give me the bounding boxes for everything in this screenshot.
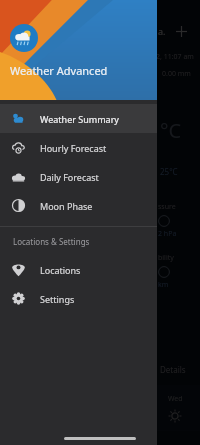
button[interactable]: Moon Phase	[0, 191, 157, 220]
staticText: Wed	[168, 394, 183, 404]
staticText: Details	[160, 364, 186, 375]
staticText: 0.00 mm	[162, 69, 191, 79]
button[interactable]: Locations	[0, 255, 157, 284]
button[interactable]: Daily Forecast	[0, 162, 157, 191]
staticText: Settings	[40, 293, 75, 305]
button[interactable]: Settings	[0, 284, 157, 313]
staticText: bility	[158, 253, 174, 263]
staticText: Weather Summary	[40, 113, 119, 125]
staticText: 25°C	[160, 166, 178, 177]
staticText: Moon Phase	[40, 200, 93, 212]
staticText: 2 hPa	[158, 229, 177, 239]
staticText: Weather Advanced	[10, 63, 108, 78]
staticText: Daily Forecast	[40, 171, 99, 183]
staticText: °C	[160, 117, 182, 144]
button[interactable]: Hourly Forecast	[0, 133, 157, 162]
button[interactable]: Weather Summary	[0, 104, 157, 133]
staticText: Locations & Settings	[13, 236, 90, 247]
staticText: km	[158, 280, 169, 290]
staticText: ssure	[158, 202, 176, 212]
staticText: 2, 11:07 am	[156, 52, 194, 62]
staticText: Hourly Forecast	[40, 142, 107, 154]
button[interactable]: Add location	[170, 20, 192, 42]
staticText: Locations	[40, 264, 81, 276]
staticText: a.	[158, 25, 166, 37]
staticText: 28	[104, 103, 150, 157]
button[interactable]: Wed	[150, 385, 200, 431]
